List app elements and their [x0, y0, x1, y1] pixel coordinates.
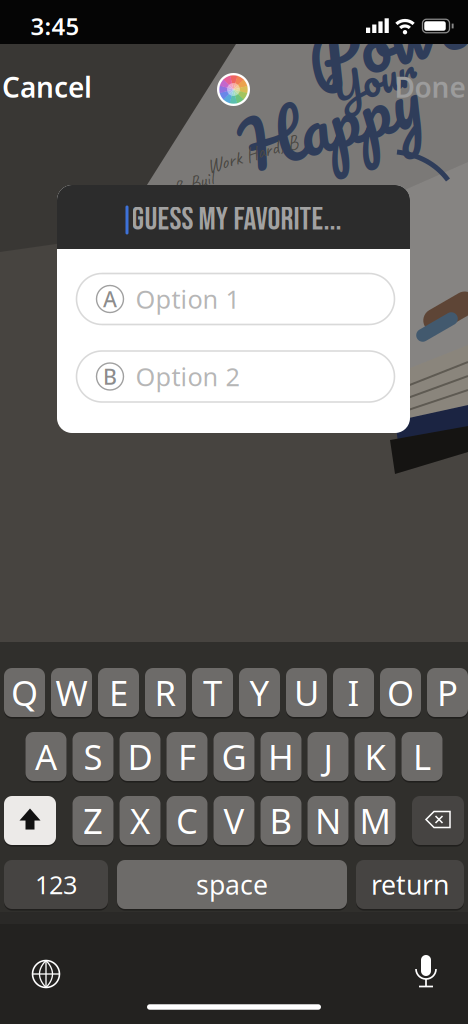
staticText: F: [178, 733, 196, 779]
staticText: Done: [394, 68, 465, 106]
button[interactable]: Next keyboard: [29, 957, 63, 991]
button[interactable]: Shift: [4, 795, 56, 846]
button[interactable]: B: [76, 351, 394, 402]
staticText: K: [364, 733, 385, 779]
button[interactable]: Q: [4, 667, 45, 718]
staticText: H: [268, 733, 294, 779]
button[interactable]: I: [333, 667, 374, 718]
staticText: P: [437, 669, 458, 715]
staticText: GUESS MY FAVORITE...: [131, 201, 341, 239]
button[interactable]: K: [354, 731, 395, 782]
button[interactable]: H: [260, 731, 301, 782]
button[interactable]: M: [354, 795, 395, 846]
staticText: return: [371, 867, 449, 902]
staticText: S: [83, 733, 102, 779]
staticText: T: [203, 669, 222, 715]
staticText: E: [109, 669, 128, 715]
button[interactable]: space: [117, 859, 347, 910]
button[interactable]: B: [260, 795, 301, 846]
staticText: Cancel: [2, 68, 92, 106]
button[interactable]: Delete: [412, 795, 464, 846]
button[interactable]: return: [356, 859, 464, 910]
staticText: J: [323, 733, 332, 779]
button[interactable]: P: [427, 667, 468, 718]
staticText: L: [413, 733, 431, 779]
button[interactable]: D: [119, 731, 160, 782]
button[interactable]: V: [213, 795, 254, 846]
button[interactable]: G: [213, 731, 254, 782]
button[interactable]: Color: [216, 72, 250, 106]
button[interactable]: Z: [72, 795, 113, 846]
staticText: 3:45: [30, 10, 79, 42]
button[interactable]: C: [166, 795, 207, 846]
staticText: C: [176, 797, 198, 843]
button[interactable]: R: [145, 667, 186, 718]
button[interactable]: Y: [239, 667, 280, 718]
button[interactable]: L: [401, 731, 442, 782]
staticText: O: [387, 669, 414, 715]
staticText: B: [103, 362, 117, 391]
staticText: space: [196, 867, 268, 902]
staticText: 123: [35, 868, 77, 901]
button[interactable]: W: [51, 667, 92, 718]
button[interactable]: S: [72, 731, 113, 782]
staticText: Option 2: [135, 360, 239, 393]
button[interactable]: E: [98, 667, 139, 718]
button[interactable]: U: [286, 667, 327, 718]
staticText: W: [55, 669, 87, 715]
staticText: Y: [249, 669, 269, 715]
staticText: Q: [11, 669, 38, 715]
staticText: D: [127, 733, 152, 779]
staticText: Option 1: [135, 282, 239, 316]
staticText: Happy: [238, 63, 421, 181]
staticText: A: [35, 733, 57, 779]
button[interactable]: O: [380, 667, 421, 718]
staticText: Z: [83, 797, 103, 843]
staticText: M: [359, 797, 390, 843]
staticText: I: [347, 669, 359, 715]
button[interactable]: T: [192, 667, 233, 718]
staticText: R: [154, 669, 176, 715]
button[interactable]: X: [119, 795, 160, 846]
button[interactable]: Dictate: [411, 954, 441, 990]
staticText: G: [221, 733, 246, 779]
button[interactable]: Cancel: [2, 68, 92, 106]
staticText: B: [269, 797, 292, 843]
button[interactable]: J: [307, 731, 348, 782]
staticText: & Buil: [173, 170, 213, 196]
staticText: X: [130, 797, 150, 843]
staticText: V: [223, 797, 244, 843]
button[interactable]: N: [307, 795, 348, 846]
button[interactable]: A: [25, 731, 66, 782]
staticText: A: [103, 285, 117, 313]
button[interactable]: 123: [4, 859, 108, 910]
button[interactable]: Done: [394, 68, 465, 106]
staticText: Work Hard, B: [205, 141, 298, 167]
staticText: U: [294, 669, 319, 715]
staticText: Your: [327, 45, 417, 115]
button[interactable]: A: [76, 273, 394, 324]
button[interactable]: F: [166, 731, 207, 782]
staticText: Powe: [304, 0, 465, 101]
staticText: N: [315, 797, 341, 843]
